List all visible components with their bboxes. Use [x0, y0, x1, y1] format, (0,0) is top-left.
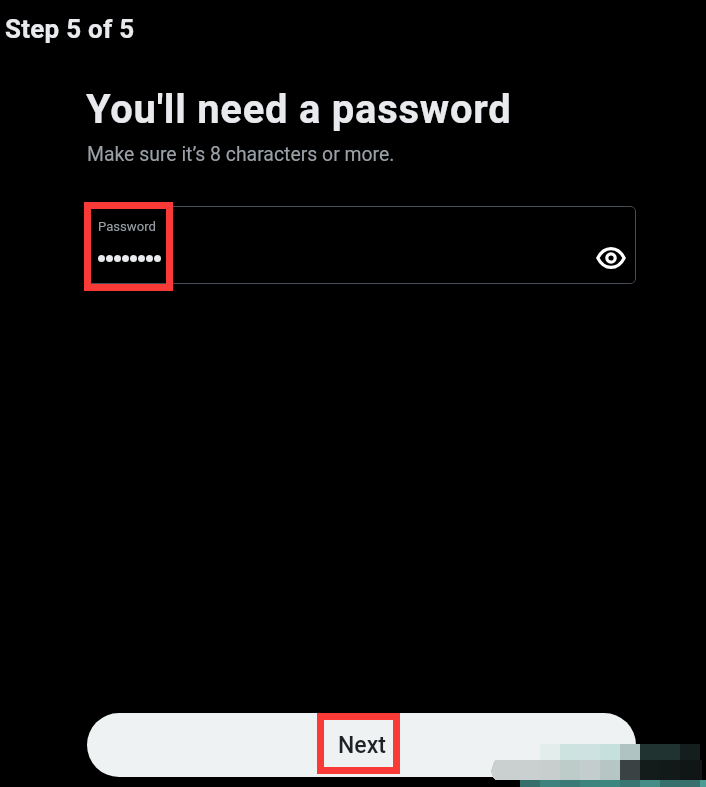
staticText: Step 5 of 5	[5, 14, 135, 44]
staticText: Password	[98, 219, 156, 234]
button[interactable]: Show password	[596, 243, 626, 273]
staticText: You'll need a password	[86, 86, 512, 133]
button[interactable]: Next	[87, 713, 636, 777]
button[interactable]: Password	[86, 206, 636, 284]
staticText: Next	[338, 732, 386, 759]
staticText: Make sure it’s 8 characters or more.	[87, 143, 395, 166]
